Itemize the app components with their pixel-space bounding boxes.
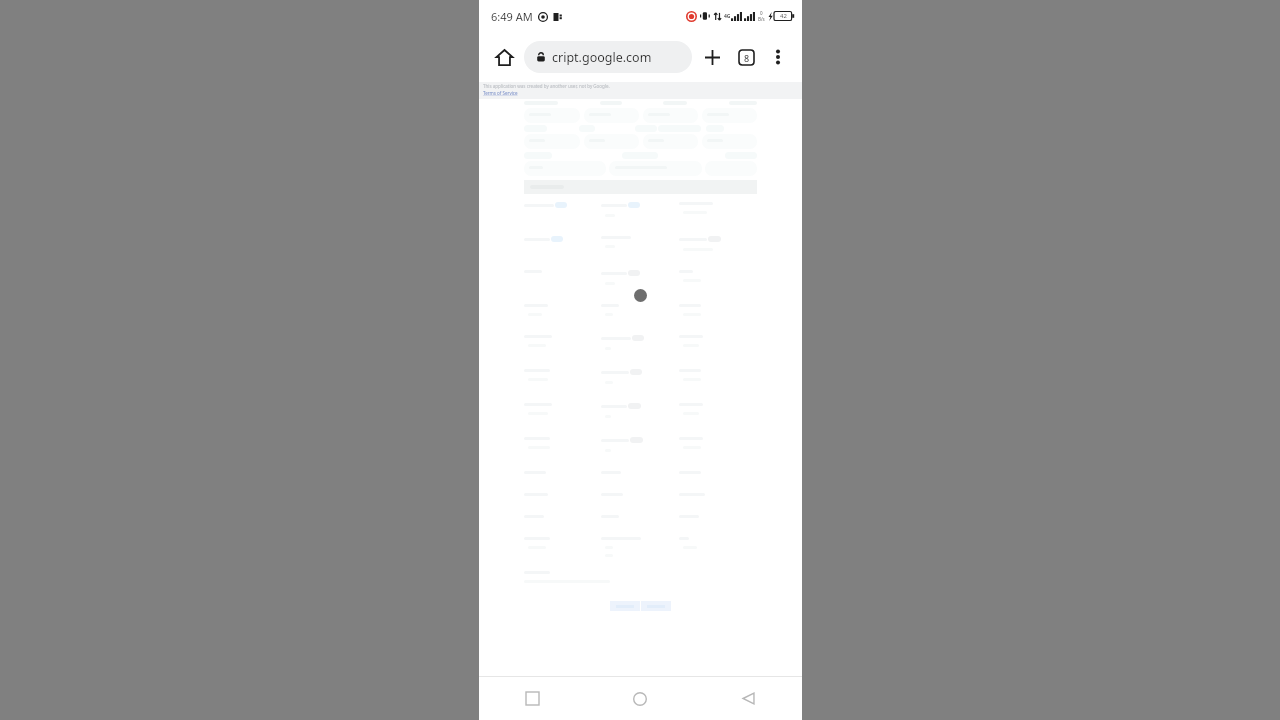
- staticText: B/s: [758, 16, 765, 22]
- button[interactable]: [610, 601, 640, 611]
- staticText: 42: [780, 12, 787, 20]
- button[interactable]: cript.google.com: [524, 41, 692, 73]
- staticText: This application was created by another …: [483, 83, 610, 89]
- button[interactable]: [641, 601, 671, 611]
- button[interactable]: New tab: [698, 43, 726, 71]
- staticText: cript.google.com: [552, 49, 652, 66]
- staticText: 6:49 AM: [491, 9, 533, 24]
- button[interactable]: Recent apps: [479, 677, 586, 720]
- button[interactable]: Back: [694, 677, 802, 720]
- button[interactable]: More options: [764, 43, 792, 71]
- button[interactable]: Tabs: 8: [732, 43, 760, 71]
- staticText: 8: [744, 52, 750, 64]
- staticText: 4G: [724, 13, 731, 20]
- staticText: 0: [760, 10, 763, 16]
- button[interactable]: Terms of Service: [483, 90, 518, 96]
- button[interactable]: Home: [489, 42, 519, 72]
- button[interactable]: Home: [586, 677, 694, 720]
- staticText: Terms of Service: [483, 90, 518, 96]
